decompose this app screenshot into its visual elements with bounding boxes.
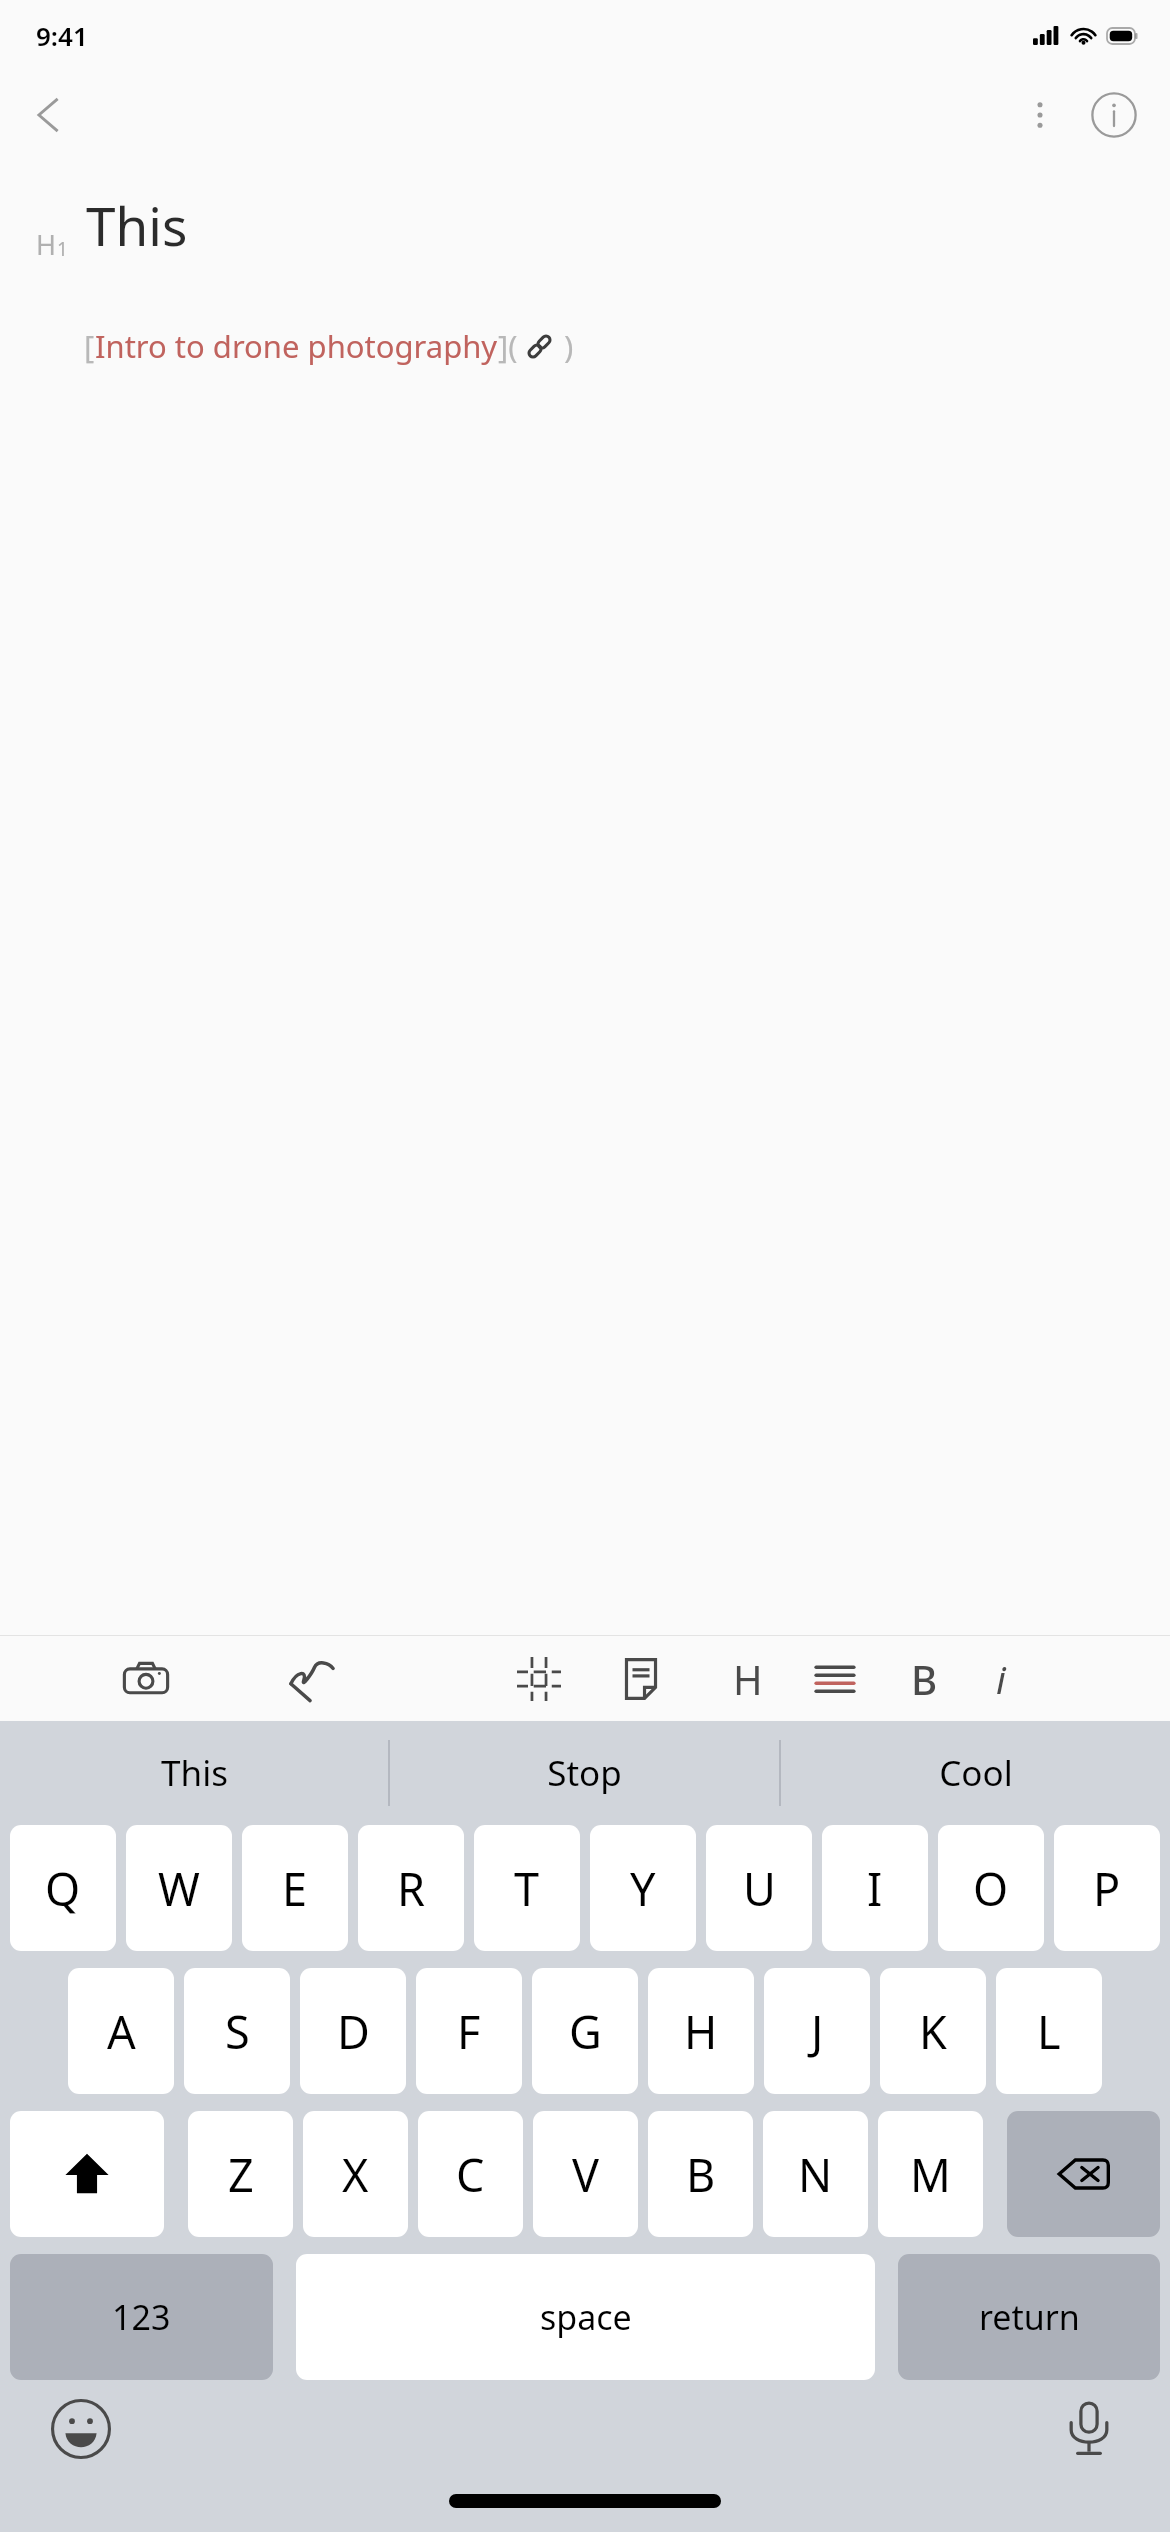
staticText: F	[457, 2001, 481, 2062]
button[interactable]: C	[418, 2111, 523, 2237]
staticText: ](	[498, 325, 518, 367]
staticText: 9:41	[36, 18, 88, 53]
button[interactable]: F	[416, 1968, 522, 2094]
staticText: V	[572, 2144, 600, 2205]
button[interactable]: W	[126, 1825, 232, 1951]
button[interactable]: X	[303, 2111, 408, 2237]
staticText: J	[811, 2001, 824, 2062]
button[interactable]: Info	[1080, 81, 1148, 149]
button[interactable]: O	[938, 1825, 1044, 1951]
staticText: H	[684, 2001, 718, 2062]
button[interactable]: Stop	[390, 1721, 779, 1825]
staticText: i	[996, 1653, 1006, 1705]
button[interactable]: N	[763, 2111, 868, 2237]
staticText: T	[514, 1858, 540, 1919]
button[interactable]: return	[898, 2254, 1160, 2380]
staticText: This	[161, 1749, 228, 1797]
button[interactable]: I	[822, 1825, 928, 1951]
staticText: K	[919, 2001, 947, 2062]
staticText: O	[973, 1858, 1009, 1919]
staticText: [	[84, 325, 95, 367]
staticText: P	[1093, 1858, 1121, 1919]
button[interactable]: Shift	[10, 2111, 164, 2237]
button[interactable]: Backspace	[1007, 2111, 1160, 2237]
staticText: 1	[57, 236, 68, 262]
button[interactable]: B	[648, 2111, 753, 2237]
button[interactable]: This	[0, 1721, 388, 1825]
button[interactable]: D	[300, 1968, 406, 2094]
staticText: H	[36, 226, 57, 263]
button[interactable]: Bold	[893, 1648, 955, 1710]
staticText: Q	[45, 1858, 81, 1919]
staticText: This	[86, 189, 188, 261]
staticText: M	[910, 2144, 951, 2205]
button[interactable]: Q	[10, 1825, 116, 1951]
button[interactable]: Camera	[115, 1648, 177, 1710]
button[interactable]: J	[764, 1968, 870, 2094]
staticText: Y	[630, 1858, 656, 1919]
button[interactable]: G	[532, 1968, 638, 2094]
staticText: )	[564, 325, 574, 367]
button[interactable]: Note	[610, 1648, 672, 1710]
button[interactable]: More options	[1006, 81, 1074, 149]
staticText: N	[798, 2144, 833, 2205]
button[interactable]: space	[296, 2254, 875, 2380]
button[interactable]: List	[804, 1648, 866, 1710]
button[interactable]: U	[706, 1825, 812, 1951]
staticText: U	[743, 1858, 776, 1919]
button[interactable]: A	[68, 1968, 174, 2094]
staticText: C	[456, 2144, 485, 2205]
button[interactable]: L	[996, 1968, 1102, 2094]
button[interactable]: Italic	[970, 1648, 1032, 1710]
button[interactable]: T	[474, 1825, 580, 1951]
button[interactable]: Heading	[717, 1648, 779, 1710]
button[interactable]: H	[648, 1968, 754, 2094]
staticText: X	[342, 2144, 369, 2205]
staticText: return	[979, 2294, 1080, 2340]
staticText: Intro to drone photography	[95, 325, 498, 367]
button[interactable]: P	[1054, 1825, 1160, 1951]
button[interactable]: R	[358, 1825, 464, 1951]
button[interactable]: Adjust	[508, 1648, 570, 1710]
button[interactable]: Z	[188, 2111, 293, 2237]
button[interactable]: Emoji	[38, 2386, 124, 2472]
staticText: I	[867, 1858, 883, 1919]
staticText: E	[282, 1858, 308, 1919]
staticText: B	[686, 2144, 716, 2205]
staticText: Stop	[547, 1749, 622, 1797]
staticText: A	[107, 2001, 136, 2062]
staticText: B	[911, 1652, 938, 1706]
staticText: W	[158, 1858, 200, 1919]
button[interactable]: K	[880, 1968, 986, 2094]
button[interactable]: Back	[10, 76, 88, 154]
staticText: space	[540, 2294, 632, 2340]
staticText: Z	[228, 2144, 254, 2205]
button[interactable]: Draw	[281, 1648, 343, 1710]
button[interactable]: Dictation	[1046, 2386, 1132, 2472]
staticText: 123	[112, 2294, 171, 2340]
staticText: G	[569, 2001, 602, 2062]
staticText: S	[225, 2001, 250, 2062]
button[interactable]: M	[878, 2111, 983, 2237]
staticText: D	[337, 2001, 370, 2062]
button[interactable]: Cool	[781, 1721, 1170, 1825]
staticText: R	[397, 1858, 425, 1919]
button[interactable]: E	[242, 1825, 348, 1951]
staticText: L	[1037, 2001, 1061, 2062]
button[interactable]: Y	[590, 1825, 696, 1951]
staticText: Cool	[939, 1749, 1013, 1797]
button[interactable]: S	[184, 1968, 290, 2094]
button[interactable]: 123	[10, 2254, 273, 2380]
staticText: H	[733, 1652, 763, 1706]
button[interactable]: V	[533, 2111, 638, 2237]
